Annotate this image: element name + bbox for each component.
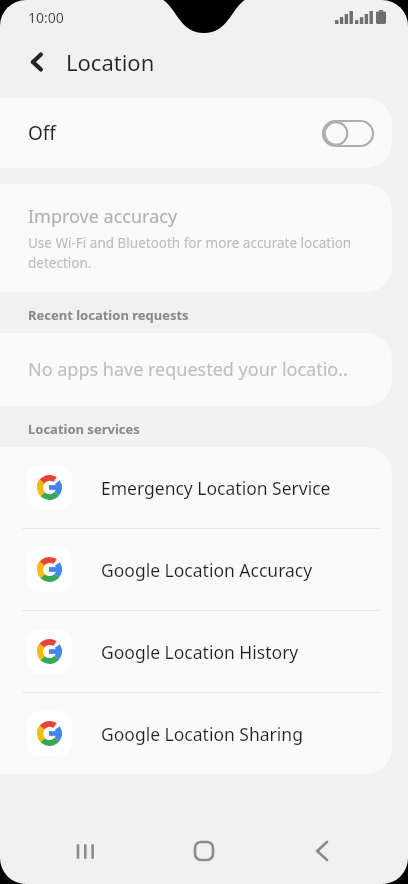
staticText: Emergency Location Service	[101, 476, 331, 500]
staticText: No apps have requested your locatio..	[28, 357, 348, 382]
staticText: Google Location History	[101, 640, 299, 664]
button[interactable]: No apps have requested your locatio..	[0, 333, 392, 406]
button[interactable]: Google Location Accuracy	[0, 529, 392, 610]
staticText: Use Wi-Fi and Bluetooth for more accurat…	[28, 234, 372, 272]
staticText: Location services	[28, 420, 140, 438]
staticText: Recent location requests	[28, 306, 189, 324]
staticText: Improve accuracy	[28, 204, 178, 229]
button[interactable]: Back	[18, 42, 58, 82]
button[interactable]: Home	[172, 819, 236, 883]
staticText: Google Location Accuracy	[101, 558, 313, 582]
button[interactable]: Google Location History	[0, 611, 392, 692]
button[interactable]: Google Location Sharing	[0, 693, 392, 774]
button[interactable]: Improve accuracy	[0, 184, 392, 292]
button[interactable]: Off	[0, 98, 392, 168]
button[interactable]: Back	[290, 819, 354, 883]
staticText: Off	[28, 120, 56, 146]
staticText: Location	[66, 47, 155, 77]
button[interactable]: Recent apps	[54, 819, 118, 883]
staticText: 10:00	[28, 8, 64, 27]
button[interactable]: Emergency Location Service	[0, 447, 392, 528]
staticText: Google Location Sharing	[101, 722, 303, 746]
